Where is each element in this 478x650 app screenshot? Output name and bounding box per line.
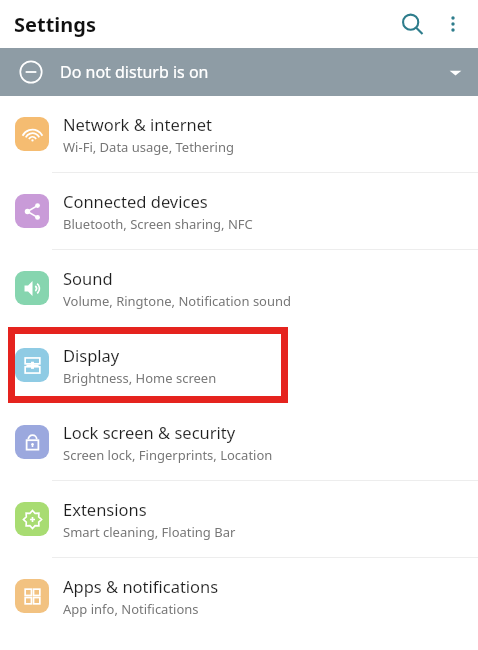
staticText: Brightness, Home screen [63,369,217,387]
staticText: Bluetooth, Screen sharing, NFC [63,215,253,233]
button[interactable]: More options [434,5,472,43]
staticText: App info, Notifications [63,600,199,618]
staticText: Connected devices [63,190,208,212]
button[interactable]: Display [0,327,478,403]
staticText: Screen lock, Fingerprints, Location [63,446,273,464]
staticText: Lock screen & security [63,421,236,443]
staticText: Sound [63,267,113,289]
staticText: Network & internet [63,113,213,135]
staticText: Apps & notifications [63,575,219,597]
button[interactable]: Lock screen & security [0,404,478,480]
button[interactable]: Network & internet [0,96,478,172]
staticText: Settings [14,11,96,38]
staticText: Wi-Fi, Data usage, Tethering [63,138,234,156]
button[interactable]: Sound [0,250,478,326]
button[interactable]: Apps & notifications [0,558,478,634]
staticText: Smart cleaning, Floating Bar [63,523,236,541]
staticText: Volume, Ringtone, Notification sound [63,292,292,310]
button[interactable]: Connected devices [0,173,478,249]
button[interactable]: Do not disturb is on [0,48,478,96]
staticText: Display [63,344,120,366]
button[interactable]: Search [390,2,434,46]
staticText: Extensions [63,498,147,520]
button[interactable]: Extensions [0,481,478,557]
staticText: Do not disturb is on [60,61,209,83]
